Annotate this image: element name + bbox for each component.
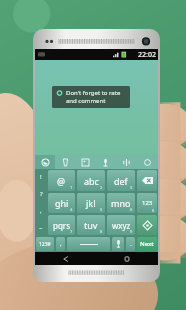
button[interactable]: ? xyxy=(35,185,47,202)
button[interactable]: def xyxy=(107,170,135,191)
staticText: 5 xyxy=(100,207,103,212)
button[interactable]: @ xyxy=(48,170,75,191)
staticText: 6 xyxy=(130,207,133,212)
staticText: wxyz xyxy=(112,220,131,231)
button[interactable]: . xyxy=(126,237,135,251)
button[interactable]: , xyxy=(56,237,65,251)
staticText: jkl xyxy=(86,197,96,209)
staticText: ! xyxy=(40,173,42,181)
staticText: Next xyxy=(140,240,154,248)
staticText: ~ xyxy=(39,224,43,232)
staticText: mno xyxy=(111,197,131,209)
staticText: 8 xyxy=(100,229,103,234)
button[interactable]: Layout xyxy=(116,155,137,169)
staticText: 1 xyxy=(70,185,73,190)
staticText: 4 xyxy=(70,207,73,212)
staticText: . xyxy=(130,240,132,248)
staticText: 123 xyxy=(142,199,153,207)
button[interactable]: Theme xyxy=(35,155,55,169)
button[interactable]: Voice input xyxy=(112,237,124,251)
button[interactable]: abc xyxy=(77,170,105,191)
button[interactable]: 123# xyxy=(36,237,54,251)
staticText: 123# xyxy=(39,241,51,248)
button[interactable]: wxyz xyxy=(107,215,135,235)
staticText: ? xyxy=(40,190,43,198)
button[interactable]: Settings xyxy=(55,155,75,169)
button[interactable]: Back xyxy=(35,252,96,265)
staticText: 2 xyxy=(100,185,103,190)
staticText: ghi xyxy=(55,197,69,209)
staticText: @ xyxy=(57,175,66,187)
button[interactable]: More xyxy=(137,155,158,169)
staticText: tuv xyxy=(84,219,98,231)
button[interactable]: Backspace xyxy=(137,170,157,191)
button[interactable]: pqrs xyxy=(48,215,75,235)
staticText: def xyxy=(114,175,128,187)
button[interactable]: Don't forget to rate and comment xyxy=(52,86,130,108)
staticText: Don't forget to rate and comment xyxy=(66,89,126,105)
button[interactable]: tuv xyxy=(77,215,105,235)
button[interactable]: ghi xyxy=(48,193,75,213)
button[interactable]: Numbers xyxy=(137,193,157,213)
staticText: pqrs xyxy=(53,220,70,231)
button[interactable]: , xyxy=(35,202,47,219)
button[interactable]: Emoji xyxy=(137,215,157,235)
staticText: 22:02 xyxy=(138,50,156,60)
button[interactable]: ! xyxy=(35,169,47,185)
staticText: 7 xyxy=(70,229,73,234)
button[interactable]: jkl xyxy=(77,193,105,213)
button[interactable]: Voice xyxy=(95,155,116,169)
staticText: 6 xyxy=(152,208,155,213)
staticText: , xyxy=(40,207,42,215)
button[interactable]: Space xyxy=(67,237,110,251)
staticText: 3 xyxy=(130,185,133,190)
staticText: 9 xyxy=(130,229,133,234)
button[interactable]: ~ xyxy=(35,219,47,236)
button[interactable]: Sticker xyxy=(75,155,95,169)
button[interactable]: Next xyxy=(137,237,157,251)
staticText: , xyxy=(60,240,62,248)
button[interactable]: mno xyxy=(107,193,135,213)
staticText: abc xyxy=(84,175,99,187)
button[interactable]: Home xyxy=(96,252,158,265)
